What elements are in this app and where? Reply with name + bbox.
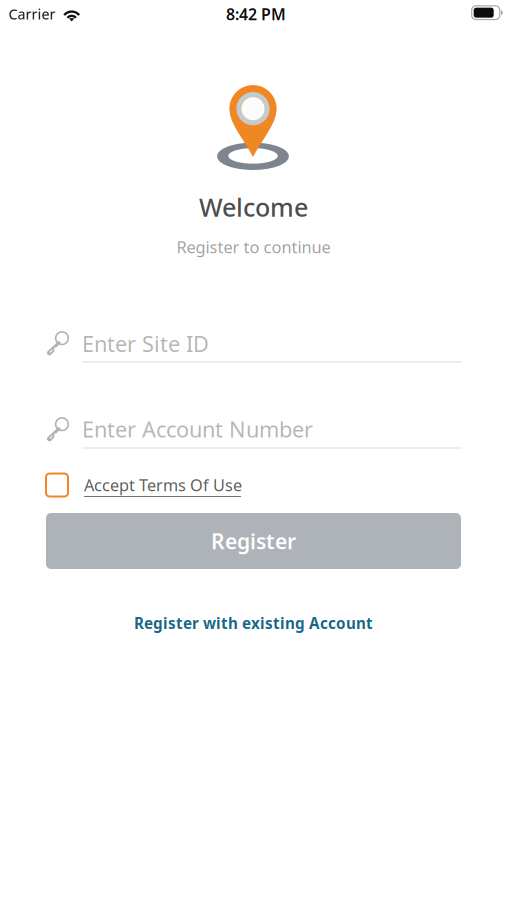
staticText: Enter Account Number <box>82 414 313 444</box>
staticText: Welcome <box>199 190 308 224</box>
staticText: Register <box>211 527 296 555</box>
staticText: Accept Terms Of Use <box>84 474 242 496</box>
staticText: Enter Site ID <box>82 329 209 358</box>
button[interactable]: Register with existing Account <box>134 609 373 637</box>
staticText: Carrier <box>8 4 55 24</box>
staticText: Register to continue <box>176 236 330 258</box>
staticText: 8:42 PM <box>226 3 286 25</box>
button[interactable]: Register <box>46 513 461 569</box>
button[interactable]: Accept Terms Of Use <box>46 469 461 501</box>
staticText: Register with existing Account <box>134 613 373 633</box>
